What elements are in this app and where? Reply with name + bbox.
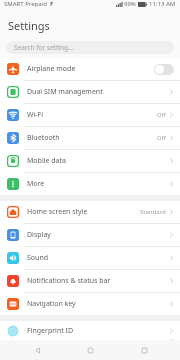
staticText: Display [27,230,51,240]
staticText: Search for setting... [14,43,74,52]
staticText: SMART Prepaid [4,0,47,8]
button[interactable]: Sound [0,247,180,269]
button[interactable]: Airplane mode [0,58,180,80]
staticText: Mobile data [27,156,66,166]
staticText: Off [157,111,166,119]
button[interactable]: Notifications & status bar [0,270,180,292]
button[interactable]: Dual SIM management [0,81,180,103]
staticText: 11:13 AM [149,0,176,8]
staticText: Home screen style [27,207,88,217]
staticText: Settings [8,18,50,33]
staticText: Navigation key [27,299,76,309]
staticText: Off [157,134,166,142]
button[interactable]: Fingerprint ID [0,321,180,340]
button[interactable]: Home [73,340,107,360]
staticText: Notifications & status bar [27,276,111,286]
staticText: Dual SIM management [27,87,103,97]
staticText: More [27,179,45,189]
staticText: Fingerprint ID [27,326,74,336]
staticText: Bluetooth [27,133,60,143]
staticText: Airplane mode [27,64,76,74]
button[interactable]: Display [0,224,180,246]
button[interactable]: More [0,173,180,195]
button[interactable]: Navigation key [0,293,180,315]
button[interactable]: Search for setting... [6,41,174,54]
button[interactable]: Bluetooth [0,127,180,149]
staticText: Wi-Fi [27,110,44,120]
button[interactable]: Mobile data [0,150,180,172]
button[interactable]: Recent apps [127,340,161,360]
staticText: 99% [124,0,136,8]
button[interactable]: Airplane mode toggle [154,64,174,75]
staticText: Sound [27,253,49,263]
button[interactable]: Home screen style [0,201,180,223]
button[interactable]: Back [20,340,54,360]
button[interactable]: Wi-Fi [0,104,180,126]
staticText: Standard [140,208,166,216]
